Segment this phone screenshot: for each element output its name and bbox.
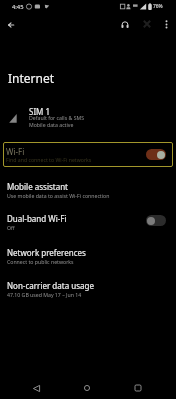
staticText: Default for calls & SMS bbox=[29, 114, 85, 121]
staticText: Network preferences bbox=[7, 247, 86, 258]
button[interactable]: Home bbox=[77, 378, 97, 398]
button[interactable]: Wi-Fi bbox=[3, 142, 173, 167]
staticText: 76% bbox=[153, 3, 163, 10]
staticText: 47.10 GB used May 17 – Jun 14 bbox=[7, 291, 82, 298]
button[interactable]: Headset bbox=[116, 16, 134, 34]
button[interactable]: Back bbox=[0, 14, 21, 35]
button[interactable]: Network preferences bbox=[0, 247, 176, 273]
button[interactable]: Dual-band Wi-Fi bbox=[0, 213, 176, 239]
button[interactable]: Turn on bbox=[146, 215, 166, 226]
staticText: Dual-band Wi-Fi bbox=[7, 213, 67, 224]
staticText: Non-carrier data usage bbox=[7, 280, 94, 291]
button[interactable]: Mobile assistant bbox=[0, 181, 176, 207]
staticText: Connect to public networks bbox=[7, 258, 74, 265]
button[interactable]: SIM 1 bbox=[0, 98, 176, 132]
staticText: Mobile assistant bbox=[7, 181, 68, 192]
button[interactable]: Cast bbox=[138, 15, 156, 33]
button[interactable]: Recents bbox=[128, 378, 148, 398]
staticText: Wi-Fi bbox=[6, 146, 25, 157]
staticText: Off bbox=[7, 224, 15, 231]
button[interactable]: More options bbox=[157, 15, 175, 33]
button[interactable]: Back bbox=[26, 378, 46, 398]
button[interactable]: Turn off bbox=[146, 149, 166, 160]
button[interactable]: Non-carrier data usage bbox=[0, 280, 176, 306]
staticText: 4:45 bbox=[12, 3, 24, 11]
staticText: SIM 1 bbox=[29, 106, 51, 117]
staticText: Mobile data active bbox=[29, 121, 74, 128]
staticText: Find and connect to Wi-Fi networks bbox=[6, 156, 92, 163]
staticText: Internet bbox=[8, 70, 55, 86]
staticText: Use mobile data to assist Wi-Fi connecti… bbox=[7, 192, 110, 199]
